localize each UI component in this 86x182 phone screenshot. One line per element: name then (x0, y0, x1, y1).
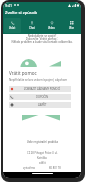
button[interactable]: Volat (4, 18, 21, 33)
staticText: sdělit (39, 161, 46, 165)
button[interactable]: Video (42, 18, 60, 33)
button[interactable]: DOPOČIN (9, 94, 71, 100)
staticText: vytvořeno (23, 166, 36, 170)
staticText: 80 801 78 (49, 166, 61, 170)
staticText: Nedokážete se spojit? Dokončte 'Vrátit p… (7, 34, 77, 44)
staticText: Zvolte si způsob (5, 10, 38, 16)
staticText: Vrátit pomoc (9, 70, 37, 76)
staticText: Vaše registrační praktika (27, 140, 58, 144)
staticText: DOPOČIN (36, 95, 49, 99)
staticText: Chat (29, 26, 35, 30)
staticText: ZOBRAZIT ZÁZNAMY POMOCÍ (24, 87, 61, 91)
button[interactable]: ZOBRAZIT ZÁZNAMY POMOCÍ (9, 86, 71, 92)
button[interactable]: Více (62, 18, 80, 33)
staticText: Katrižka (37, 156, 47, 160)
staticText: CZ 28 Pihoppt Práce U ul. (27, 151, 58, 155)
staticText: Video (48, 26, 55, 30)
staticText: Nepřihlašte se bez vrácení spojení, abyc… (9, 78, 68, 82)
staticText: Více (69, 26, 74, 30)
button[interactable]: Chat (23, 18, 40, 33)
staticText: Volat (9, 26, 16, 30)
staticText: 9:41 (5, 3, 13, 8)
button[interactable]: ZAVŘÍT (9, 102, 71, 108)
staticText: ZAVŘÍT (38, 103, 47, 107)
